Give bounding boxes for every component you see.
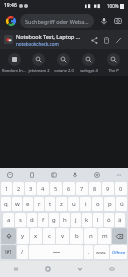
button[interactable]: Lens xyxy=(111,14,124,27)
button[interactable]: 4 xyxy=(37,182,49,195)
button[interactable]: Keyboard tool 1 xyxy=(26,169,37,180)
staticText: k xyxy=(85,216,89,224)
button[interactable]: Öffnen xyxy=(110,245,127,259)
button[interactable]: c xyxy=(43,228,55,244)
button[interactable]: j xyxy=(71,213,81,227)
button[interactable]: 8 xyxy=(89,182,101,195)
button[interactable]: k xyxy=(82,213,92,227)
button[interactable]: d xyxy=(27,213,37,227)
button[interactable]: Keyboard tool 0 xyxy=(4,169,15,180)
staticText: n xyxy=(89,232,93,240)
button[interactable]: 9 xyxy=(102,182,114,195)
button[interactable]: 1 xyxy=(1,182,12,195)
button[interactable]: Copy xyxy=(100,34,112,46)
button[interactable]: Random Int... xyxy=(2,52,26,74)
staticText: webgpt 4 xyxy=(80,68,98,73)
button[interactable]: Home xyxy=(32,261,64,277)
staticText: 5 xyxy=(54,185,58,192)
button[interactable]: p xyxy=(104,197,115,211)
button[interactable]: Voice search xyxy=(97,14,110,27)
staticText: ü xyxy=(120,200,124,208)
button[interactable]: Keyboard tool 4 xyxy=(91,169,102,180)
button[interactable]: h xyxy=(60,213,70,227)
button[interactable]: f xyxy=(38,213,48,227)
button[interactable]: e xyxy=(23,197,33,211)
staticText: h xyxy=(63,216,67,224)
button[interactable]: n xyxy=(84,228,97,244)
staticText: octane 2.0 xyxy=(54,68,74,73)
button[interactable]: 0 xyxy=(115,182,127,195)
staticText: f xyxy=(42,216,45,224)
staticText: p xyxy=(108,200,112,208)
staticText: i xyxy=(85,200,87,208)
staticText: e xyxy=(26,200,30,208)
staticText: 2 xyxy=(17,185,21,192)
button[interactable]: Keyboard tool 5 xyxy=(113,169,124,180)
button[interactable]: x xyxy=(30,228,42,244)
button[interactable]: Shift xyxy=(1,228,16,244)
staticText: l xyxy=(97,216,99,224)
staticText: s xyxy=(19,216,22,224)
button[interactable]: m xyxy=(98,228,111,244)
staticText: 0 xyxy=(119,185,123,192)
staticText: j xyxy=(75,216,77,224)
button[interactable]: 6 xyxy=(63,182,75,195)
button[interactable]: ü xyxy=(116,197,127,211)
button[interactable]: u xyxy=(68,197,79,211)
button[interactable]: Keyboard tool 2 xyxy=(48,169,59,180)
button[interactable]: Switch keyboard xyxy=(96,261,128,277)
button[interactable]: !#1 xyxy=(1,245,16,259)
button[interactable]: 2 xyxy=(13,182,24,195)
button[interactable] xyxy=(29,245,83,259)
staticText: z xyxy=(60,200,63,208)
staticText: Random Int... xyxy=(2,68,26,73)
button[interactable]: b xyxy=(70,228,83,244)
button[interactable]: www. xyxy=(94,245,109,259)
button[interactable]: webgpt 4 xyxy=(76,52,101,74)
button[interactable]: Google xyxy=(4,14,18,28)
button[interactable]: s xyxy=(15,213,26,227)
staticText: b xyxy=(75,232,79,240)
button[interactable]: ä xyxy=(115,213,125,227)
button[interactable]: Edit xyxy=(112,34,124,46)
button[interactable]: Recents xyxy=(0,261,32,277)
button[interactable]: l xyxy=(93,213,103,227)
button[interactable]: 3 xyxy=(25,182,36,195)
button[interactable]: octane 2.0 xyxy=(51,52,76,74)
button[interactable]: t xyxy=(45,197,55,211)
button[interactable]: Share xyxy=(88,34,100,46)
button[interactable]: y xyxy=(17,228,29,244)
staticText: 9 xyxy=(106,185,110,192)
button[interactable]: Keyboard tool 3 xyxy=(69,169,80,180)
staticText: 3 xyxy=(29,185,33,192)
button[interactable]: o xyxy=(92,197,103,211)
button[interactable]: The P xyxy=(101,52,126,74)
button[interactable]: w xyxy=(12,197,22,211)
button[interactable]: Suchbegriff oder Webadresse xyxy=(20,14,94,28)
button[interactable]: Hide keyboard xyxy=(64,261,96,277)
button[interactable]: 5 xyxy=(50,182,62,195)
button[interactable]: / xyxy=(17,245,28,259)
button[interactable]: i xyxy=(80,197,91,211)
staticText: d xyxy=(30,216,34,224)
button[interactable]: z xyxy=(56,197,67,211)
staticText: x xyxy=(34,232,38,240)
button[interactable]: q xyxy=(1,197,11,211)
button[interactable]: a xyxy=(3,213,14,227)
staticText: jetstream 2 xyxy=(28,68,50,73)
button[interactable]: g xyxy=(49,213,59,227)
button[interactable]: . xyxy=(84,245,93,259)
staticText: notebookcheck.com xyxy=(16,41,59,47)
button[interactable]: r xyxy=(34,197,44,211)
button[interactable]: v xyxy=(56,228,69,244)
button[interactable]: ö xyxy=(104,213,114,227)
button[interactable]: 7 xyxy=(76,182,88,195)
button[interactable]: Backspace xyxy=(112,228,127,244)
staticText: m xyxy=(102,232,108,240)
staticText: a xyxy=(7,216,11,224)
staticText: v xyxy=(61,232,65,240)
staticText: 7 xyxy=(80,185,84,192)
staticText: ö xyxy=(107,216,111,224)
staticText: w xyxy=(15,200,20,208)
button[interactable]: jetstream 2 xyxy=(26,52,51,74)
